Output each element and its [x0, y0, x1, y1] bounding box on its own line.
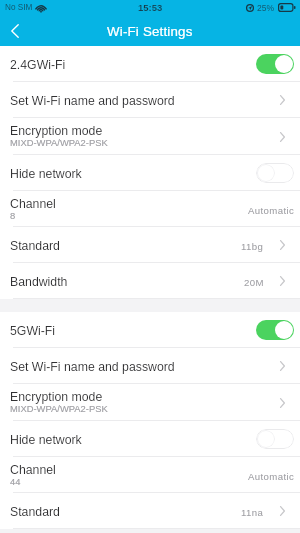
button[interactable]: Standard — [0, 493, 300, 529]
button[interactable]: Channel — [0, 191, 300, 227]
staticText: Encryption mode — [10, 390, 103, 404]
button[interactable]: Set Wi-Fi name and password — [0, 348, 300, 384]
staticText: 20M — [244, 277, 264, 288]
staticText: 2.4GWi-Fi — [10, 58, 66, 72]
button[interactable]: Encryption mode — [0, 118, 300, 155]
staticText: Set Wi-Fi name and password — [10, 360, 175, 374]
staticText: Hide network — [10, 433, 82, 447]
button[interactable]: Switch on — [256, 320, 294, 340]
button[interactable]: Switch off — [256, 163, 294, 183]
staticText: Standard — [10, 239, 60, 253]
staticText: Encryption mode — [10, 124, 103, 138]
button[interactable]: Bandwidth — [0, 263, 300, 299]
staticText: Set Wi-Fi name and password — [10, 94, 175, 108]
button[interactable]: Encryption mode — [0, 384, 300, 421]
button[interactable]: Hide network — [0, 421, 300, 457]
button[interactable]: Switch on — [256, 54, 294, 74]
staticText: Wi-Fi Settings — [107, 24, 193, 39]
button[interactable]: 5GWi-Fi — [0, 312, 300, 348]
staticText: Channel — [10, 463, 56, 477]
button[interactable]: Channel — [0, 457, 300, 493]
staticText: MIXD-WPA/WPA2-PSK — [10, 137, 108, 148]
staticText: 25% — [257, 3, 275, 12]
button[interactable]: Set Wi-Fi name and password — [0, 82, 300, 118]
staticText: No SIM — [5, 3, 33, 12]
button[interactable]: Switch off — [256, 429, 294, 449]
staticText: 44 — [10, 476, 21, 487]
staticText: 8 — [10, 210, 16, 221]
staticText: 11bg — [241, 241, 264, 252]
button[interactable]: 2.4GWi-Fi — [0, 46, 300, 82]
staticText: 11na — [241, 507, 264, 518]
button[interactable]: Hide network — [0, 155, 300, 191]
button[interactable]: Back — [0, 15, 30, 46]
button[interactable]: Standard — [0, 227, 300, 263]
staticText: Automatic — [248, 471, 295, 482]
staticText: 5GWi-Fi — [10, 324, 56, 338]
staticText: Automatic — [248, 205, 295, 216]
staticText: Standard — [10, 505, 60, 519]
staticText: Channel — [10, 197, 56, 211]
staticText: MIXD-WPA/WPA2-PSK — [10, 403, 108, 414]
staticText: 15:53 — [138, 2, 163, 13]
staticText: Hide network — [10, 167, 82, 181]
staticText: Bandwidth — [10, 275, 68, 289]
